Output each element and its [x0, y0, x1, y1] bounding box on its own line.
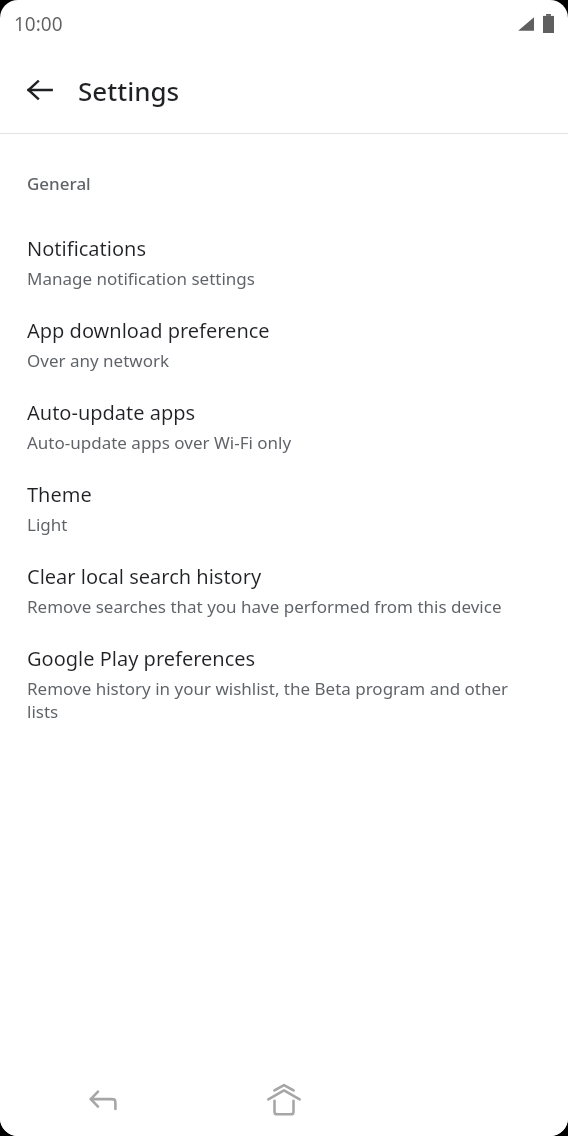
button[interactable]: Back	[12, 62, 68, 118]
button[interactable]: App download preference	[0, 317, 568, 399]
staticText: Remove history in your wishlist, the Bet…	[27, 677, 540, 723]
staticText: Auto-update apps	[27, 399, 196, 426]
staticText: Theme	[27, 481, 92, 508]
staticText: App download preference	[27, 317, 270, 344]
button[interactable]: Auto-update apps	[0, 399, 568, 481]
staticText: Google Play preferences	[27, 645, 256, 672]
button[interactable]: Home	[258, 1074, 310, 1126]
staticText: Notifications	[27, 235, 146, 262]
button[interactable]: Theme	[0, 481, 568, 563]
staticText: Light	[27, 513, 68, 536]
staticText: Auto-update apps over Wi-Fi only	[27, 431, 292, 454]
button[interactable]: Back	[80, 1076, 128, 1124]
button[interactable]: Clear local search history	[0, 563, 568, 645]
staticText: 10:00	[14, 11, 63, 37]
staticText: General	[27, 172, 91, 195]
button[interactable]: Notifications	[0, 235, 568, 317]
staticText: Over any network	[27, 349, 170, 372]
staticText: Remove searches that you have performed …	[27, 595, 502, 618]
button[interactable]: Google Play preferences	[0, 645, 568, 750]
staticText: Settings	[78, 73, 180, 108]
staticText: Clear local search history	[27, 563, 262, 590]
staticText: Manage notification settings	[27, 267, 255, 290]
